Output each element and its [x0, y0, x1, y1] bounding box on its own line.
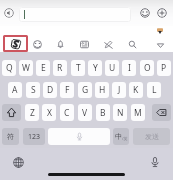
staticText: U	[109, 62, 116, 74]
staticText: Q	[6, 62, 13, 74]
staticText: V	[82, 107, 88, 119]
button[interactable]: Stickers	[3, 35, 28, 52]
button[interactable]: O	[140, 60, 154, 76]
button[interactable]: Y	[88, 60, 102, 76]
button[interactable]: U	[105, 60, 119, 76]
staticText: D	[47, 84, 54, 96]
staticText: /英	[122, 136, 128, 141]
button[interactable]: Backspace	[152, 104, 171, 121]
staticText: Y	[93, 62, 98, 74]
button[interactable]: D	[43, 82, 57, 98]
staticText: T	[76, 62, 81, 74]
staticText: 发送	[145, 132, 159, 141]
staticText: H	[99, 84, 106, 96]
staticText: K	[133, 84, 139, 96]
staticText: 符	[7, 132, 14, 141]
staticText: L	[152, 84, 157, 96]
button[interactable]: Search	[123, 35, 141, 53]
button[interactable]: X	[42, 104, 56, 121]
button[interactable]: More	[151, 36, 169, 54]
button[interactable]: Sounds	[51, 35, 69, 53]
staticText: R	[57, 62, 63, 74]
staticText: B	[100, 107, 106, 119]
staticText: E	[41, 62, 46, 74]
button[interactable]: C	[60, 104, 74, 121]
button[interactable]: Z	[25, 104, 39, 121]
button[interactable]: V	[78, 104, 92, 121]
button[interactable]: K	[129, 82, 143, 98]
button[interactable]: B	[96, 104, 110, 121]
button[interactable]: P	[157, 60, 171, 76]
button[interactable]: Symbols	[2, 128, 19, 145]
staticText: J	[118, 84, 121, 96]
button[interactable]: F	[60, 82, 74, 98]
button[interactable]	[19, 7, 131, 22]
button[interactable]: R	[53, 60, 67, 76]
staticText: 中	[115, 132, 122, 141]
staticText: O	[144, 62, 151, 74]
button[interactable]: M	[131, 104, 145, 121]
staticText: I	[128, 62, 131, 74]
button[interactable]: Add	[157, 8, 167, 18]
staticText: 123	[28, 132, 41, 142]
staticText: P	[161, 62, 167, 74]
button[interactable]: S	[26, 82, 40, 98]
button[interactable]: T	[71, 60, 85, 76]
button[interactable]: Doodle	[99, 35, 117, 53]
staticText: M	[134, 107, 142, 119]
staticText: Z	[30, 107, 35, 119]
button[interactable]: Space	[48, 128, 110, 145]
button[interactable]: N	[113, 104, 127, 121]
staticText: X	[47, 107, 52, 119]
button[interactable]: J	[112, 82, 126, 98]
button[interactable]: Language	[113, 128, 129, 145]
button[interactable]: 发送	[133, 128, 170, 145]
button[interactable]: H	[95, 82, 109, 98]
button[interactable]: Numbers	[23, 128, 45, 145]
staticText: S	[31, 84, 36, 96]
button[interactable]: Emoji	[140, 8, 150, 18]
staticText: F	[65, 84, 70, 96]
button[interactable]: Voice typing	[149, 156, 161, 168]
button[interactable]: Shift	[2, 104, 21, 121]
staticText: W	[22, 62, 30, 74]
button[interactable]: A	[8, 82, 22, 98]
button[interactable]: Q	[2, 60, 16, 76]
button[interactable]: Switch keyboard	[13, 157, 24, 168]
button[interactable]: E	[36, 60, 50, 76]
button[interactable]: Favourites	[75, 35, 93, 53]
staticText: C	[64, 107, 70, 119]
staticText: A	[12, 84, 18, 96]
button[interactable]: Voice input	[4, 8, 14, 18]
button[interactable]: G	[78, 82, 92, 98]
staticText: G	[82, 84, 89, 96]
button[interactable]: Emoticons	[28, 35, 46, 53]
button[interactable]: L	[147, 82, 161, 98]
button[interactable]: I	[122, 60, 136, 76]
button[interactable]: W	[19, 60, 33, 76]
staticText: N	[117, 107, 124, 119]
